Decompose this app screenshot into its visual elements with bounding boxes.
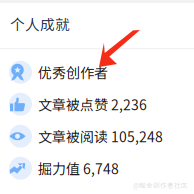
button[interactable]: 掘力值 6,748 (0, 152, 194, 184)
button[interactable]: 优秀创作者 (0, 56, 194, 88)
staticText: 掘力值 6,748 (38, 158, 119, 178)
button[interactable]: 文章被点赞 2,236 (0, 88, 194, 120)
staticText: 文章被点赞 2,236 (38, 94, 147, 114)
staticText: @掘金创作者社区 (133, 180, 188, 190)
staticText: 优秀创作者 (38, 62, 108, 82)
staticText: 文章被阅读 105,248 (38, 126, 163, 146)
staticText: 个人成就 (10, 13, 70, 34)
button[interactable]: 文章被阅读 105,248 (0, 120, 194, 152)
